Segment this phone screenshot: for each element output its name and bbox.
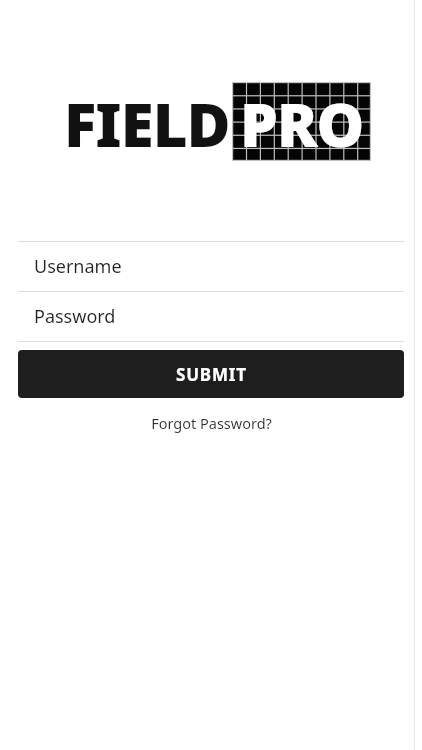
- button[interactable]: SUBMIT: [18, 350, 404, 398]
- staticText: Forgot Password?: [151, 413, 272, 433]
- staticText: Username: [34, 254, 122, 279]
- button[interactable]: Password field: [0, 292, 422, 341]
- button[interactable]: Forgot Password?: [141, 410, 282, 436]
- staticText: SUBMIT: [176, 363, 247, 386]
- staticText: Password: [34, 304, 116, 329]
- button[interactable]: Username field: [0, 242, 422, 291]
- staticText: PRO: [240, 83, 364, 162]
- staticText: FIELD: [64, 83, 230, 162]
